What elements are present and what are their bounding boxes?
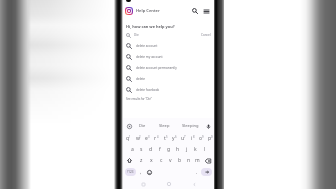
- staticText: z: [140, 157, 143, 164]
- staticText: p: [208, 135, 212, 142]
- staticText: y: [172, 135, 175, 142]
- button[interactable]: x: [146, 155, 156, 166]
- staticText: .: [196, 169, 198, 176]
- staticText: n: [187, 157, 191, 164]
- staticText: w: [136, 135, 140, 142]
- staticText: 5: [166, 135, 168, 139]
- button[interactable]: t: [160, 133, 169, 144]
- staticText: Help Center: [136, 8, 160, 14]
- staticText: Die: [134, 33, 139, 37]
- button[interactable]: b: [175, 155, 184, 166]
- button[interactable]: n: [184, 155, 193, 166]
- button[interactable]: Die: [126, 30, 211, 40]
- button[interactable]: k: [191, 144, 200, 155]
- staticText: o: [199, 135, 203, 142]
- staticText: 0: [211, 135, 213, 139]
- staticText: b: [178, 157, 182, 164]
- staticText: g: [167, 146, 171, 153]
- staticText: Sleeping: [182, 123, 199, 129]
- staticText: ?123: [127, 170, 134, 174]
- staticText: s: [140, 146, 143, 153]
- staticText: 7: [184, 135, 186, 139]
- staticText: q: [126, 135, 130, 142]
- button[interactable]: u: [178, 133, 187, 144]
- button[interactable]: i: [187, 133, 196, 144]
- button[interactable]: delete account permanently: [126, 62, 211, 73]
- button[interactable]: ?123: [125, 168, 136, 176]
- button[interactable]: j: [182, 144, 191, 155]
- staticText: See results for “Die”: [126, 97, 152, 101]
- staticText: k: [194, 146, 197, 153]
- staticText: r: [154, 135, 157, 142]
- button[interactable]: e: [142, 133, 151, 144]
- button[interactable]: d: [146, 144, 155, 155]
- staticText: Cancel: [201, 33, 211, 37]
- button[interactable]: delete: [126, 73, 211, 84]
- button[interactable]: ,: [136, 166, 145, 178]
- button[interactable]: Enter: [201, 168, 212, 176]
- staticText: delete account: [136, 44, 158, 48]
- staticText: Die: [139, 123, 146, 129]
- button[interactable]: h: [173, 144, 182, 155]
- button[interactable]: l: [200, 144, 209, 155]
- button[interactable]: r: [151, 133, 160, 144]
- staticText: h: [176, 146, 180, 153]
- button[interactable]: delete facebook: [126, 84, 211, 95]
- staticText: l: [204, 146, 206, 153]
- staticText: a: [131, 146, 134, 153]
- staticText: x: [150, 157, 153, 164]
- button[interactable]: Menu: [201, 6, 211, 16]
- staticText: m: [195, 157, 200, 164]
- staticText: d: [149, 146, 153, 153]
- staticText: Sleep: [159, 123, 170, 129]
- button[interactable]: Home: [164, 179, 174, 189]
- staticText: 1: [129, 135, 131, 139]
- staticText: v: [169, 157, 172, 164]
- staticText: e: [145, 135, 148, 142]
- button[interactable]: a: [128, 144, 137, 155]
- button[interactable]: Shift: [123, 155, 136, 166]
- staticText: ,: [140, 169, 142, 176]
- staticText: 3: [148, 135, 150, 139]
- staticText: delete facebook: [136, 88, 160, 92]
- button[interactable]: m: [193, 155, 202, 166]
- staticText: 8: [193, 135, 195, 139]
- button[interactable]: s: [137, 144, 146, 155]
- staticText: 9: [202, 135, 204, 139]
- button[interactable]: w: [133, 133, 142, 144]
- staticText: u: [181, 135, 185, 142]
- staticText: j: [186, 146, 188, 153]
- button[interactable]: o: [196, 133, 205, 144]
- button[interactable]: Search: [190, 6, 200, 16]
- button[interactable]: p: [205, 133, 214, 144]
- button[interactable]: Emoji: [145, 166, 154, 178]
- staticText: 4: [157, 135, 159, 139]
- button[interactable]: f: [155, 144, 164, 155]
- staticText: i: [191, 135, 193, 142]
- staticText: 6: [175, 135, 177, 139]
- button[interactable]: delete account: [126, 40, 211, 51]
- button[interactable]: v: [166, 155, 175, 166]
- button[interactable]: Voice input: [204, 122, 212, 130]
- button[interactable]: q: [123, 133, 133, 144]
- staticText: c: [160, 157, 163, 164]
- button[interactable]: z: [136, 155, 146, 166]
- staticText: delete my account: [136, 55, 163, 59]
- button[interactable]: y: [169, 133, 178, 144]
- button[interactable]: Back: [189, 179, 199, 189]
- staticText: Hi, how can we help you?: [126, 24, 175, 29]
- button[interactable]: Recents: [138, 179, 148, 189]
- button[interactable]: c: [156, 155, 166, 166]
- staticText: t: [164, 135, 166, 142]
- staticText: f: [159, 146, 161, 153]
- button[interactable]: delete my account: [126, 51, 211, 62]
- staticText: delete: [136, 77, 146, 81]
- button[interactable]: .: [192, 166, 201, 178]
- staticText: delete account permanently: [136, 66, 177, 70]
- button[interactable]: g: [164, 144, 173, 155]
- button[interactable]: Backspace: [202, 155, 214, 166]
- button[interactable]: Expand toolbar: [125, 122, 133, 130]
- staticText: 2: [139, 135, 141, 139]
